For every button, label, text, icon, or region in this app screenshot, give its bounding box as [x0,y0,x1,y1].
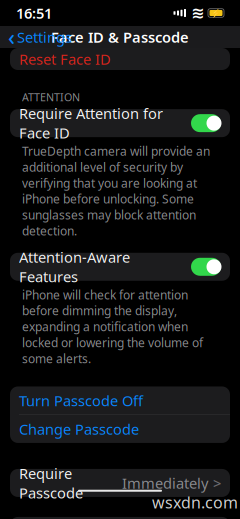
button[interactable]: Change Passcode [10,415,230,443]
staticText: Require Attention for Face ID [19,104,163,143]
button[interactable]: Turn Passcode Off [10,386,230,414]
button[interactable]: Require Passcode [10,469,230,497]
staticText: Reset Face ID [19,49,111,69]
staticText: ATTENTION [22,90,80,104]
button[interactable]: ‹ [0,26,80,48]
staticText: Attention-Aware Features [19,247,130,286]
staticText: Settings [17,27,72,47]
staticText: Require Passcode [19,463,83,502]
staticText: iPhone will check for attention before d… [22,287,203,366]
staticText: Face ID & Passcode [51,27,189,47]
staticText: TrueDepth camera will provide an additio… [22,143,210,239]
button[interactable]: Reset Face ID [10,48,230,70]
staticText: Change Passcode [19,419,139,439]
staticText: 16:51 [16,3,52,23]
button[interactable]: Attention-Aware Features [10,253,230,281]
staticText: wsxdn.com [152,492,238,513]
staticText: ⚡ [211,8,221,17]
button[interactable]: Require Attention for Face ID [10,109,230,137]
staticText: ‹ [8,23,15,51]
staticText: > [213,473,221,493]
staticText: Immediately [122,473,208,493]
staticText: Turn Passcode Off [19,391,143,410]
button[interactable]: Voice Dial [10,517,230,519]
staticText: ≋ [191,4,204,22]
